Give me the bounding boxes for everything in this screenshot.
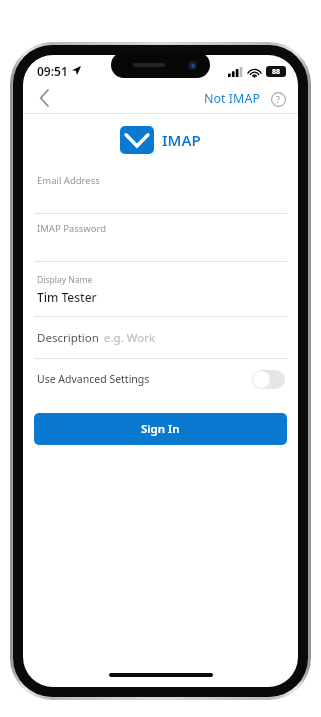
staticText: Not IMAP xyxy=(204,90,260,107)
staticText: IMAP xyxy=(162,130,201,150)
staticText: Display Name xyxy=(37,274,93,286)
staticText: Sign In xyxy=(141,421,180,437)
staticText: Use Advanced Settings xyxy=(37,372,150,386)
staticText: 09:51 xyxy=(37,63,68,79)
button[interactable]: Use Advanced Settings xyxy=(23,359,298,399)
button[interactable]: Help xyxy=(267,88,289,110)
button[interactable]: Description xyxy=(23,317,298,359)
button[interactable]: Display Name xyxy=(23,262,298,317)
button[interactable]: Email Address xyxy=(23,166,298,214)
button[interactable]: Back xyxy=(27,83,61,113)
button[interactable]: IMAP Password xyxy=(23,214,298,262)
staticText: 88 xyxy=(272,67,281,77)
staticText: IMAP Password xyxy=(37,222,107,235)
button[interactable]: Sign In xyxy=(34,413,287,445)
staticText: e.g. Work xyxy=(104,330,156,346)
staticText: Tim Tester xyxy=(37,289,97,305)
staticText: Description xyxy=(37,330,99,346)
staticText: Email Address xyxy=(37,174,100,187)
button[interactable]: Not IMAP xyxy=(202,86,262,111)
staticText: ? xyxy=(276,93,280,105)
